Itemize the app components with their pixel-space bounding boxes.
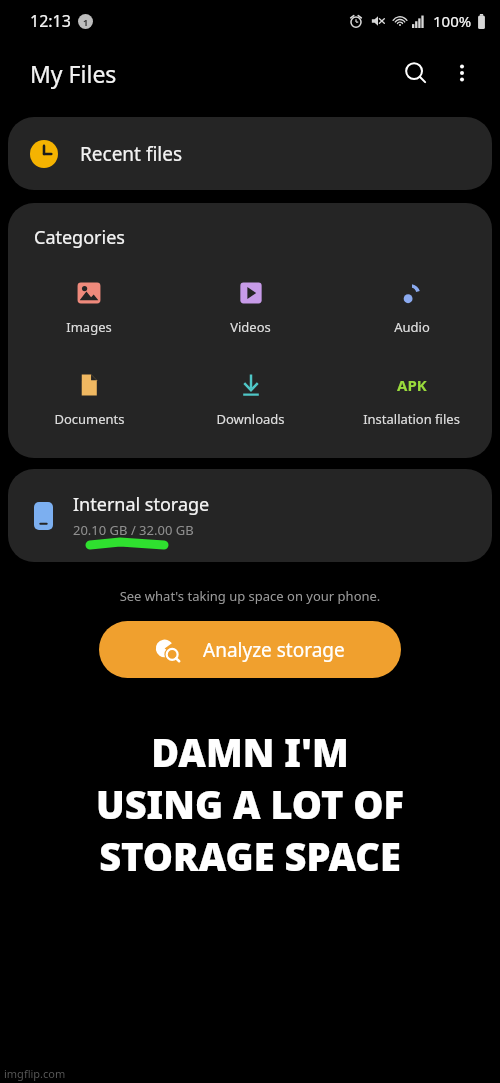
staticText: Recent files bbox=[80, 141, 183, 167]
staticText: 100% bbox=[433, 11, 472, 31]
staticText: 1 bbox=[83, 16, 89, 28]
button[interactable]: APK bbox=[331, 366, 492, 432]
button[interactable]: More options bbox=[440, 51, 484, 95]
staticText: See what's taking up space on your phone… bbox=[0, 587, 500, 605]
staticText: Categories bbox=[34, 225, 125, 250]
button[interactable]: Internal storage bbox=[8, 469, 492, 562]
button[interactable]: Images bbox=[8, 274, 170, 340]
button[interactable]: Recent files bbox=[8, 117, 492, 190]
staticText: imgflip.com bbox=[4, 1066, 66, 1081]
button[interactable]: Audio bbox=[331, 274, 492, 340]
button[interactable]: Videos bbox=[170, 274, 331, 340]
staticText: Videos bbox=[230, 318, 271, 336]
staticText: STORAGE SPACE bbox=[12, 830, 488, 882]
button[interactable]: Search bbox=[392, 49, 440, 97]
staticText: APK bbox=[397, 375, 427, 395]
staticText: Audio bbox=[394, 318, 430, 336]
staticText: DAMN I'M bbox=[12, 726, 488, 778]
button[interactable]: Documents bbox=[8, 366, 170, 432]
staticText: Downloads bbox=[216, 410, 285, 428]
staticText: USING A LOT OF bbox=[12, 778, 488, 830]
button[interactable]: Analyze storage bbox=[99, 621, 401, 678]
staticText: Installation files bbox=[363, 410, 460, 428]
staticText: Documents bbox=[54, 410, 125, 428]
staticText: Analyze storage bbox=[203, 637, 345, 663]
staticText: My Files bbox=[30, 58, 117, 89]
staticText: 12:13 bbox=[30, 10, 71, 32]
staticText: Images bbox=[66, 318, 112, 336]
staticText: 20.10 GB / 32.00 GB bbox=[73, 521, 194, 539]
button[interactable]: Downloads bbox=[170, 366, 331, 432]
staticText: Internal storage bbox=[73, 492, 210, 517]
